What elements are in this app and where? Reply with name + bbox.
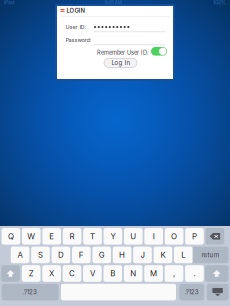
staticText: E (49, 231, 54, 241)
button[interactable]: Z (22, 265, 40, 282)
button[interactable]: Hide keyboard (207, 284, 228, 300)
button[interactable]: P (185, 228, 204, 245)
staticText: LOGIN (66, 7, 84, 14)
staticText: . (193, 269, 195, 278)
button[interactable]: .?123 (2, 284, 59, 300)
staticText: .?123 (185, 288, 199, 296)
button[interactable]: O (165, 228, 183, 245)
button[interactable]: Y (104, 228, 122, 245)
staticText: Z (29, 269, 34, 278)
button[interactable]: F (72, 247, 91, 263)
button[interactable]: .?123 (179, 284, 204, 300)
button[interactable]: Shift (205, 265, 228, 282)
button[interactable]: H (113, 247, 131, 263)
staticText: G (99, 250, 105, 260)
staticText: S (38, 250, 43, 260)
button[interactable]: J (133, 247, 152, 263)
staticText: R (70, 231, 75, 241)
button[interactable]: T (83, 228, 102, 245)
button[interactable]: D (52, 247, 70, 263)
staticText: Y (110, 231, 115, 241)
button[interactable]: K (154, 247, 172, 263)
staticText: B (110, 269, 115, 278)
button[interactable]: Log In (104, 58, 137, 67)
staticText: A (18, 250, 23, 260)
staticText: J (140, 250, 144, 260)
button[interactable]: U (124, 228, 143, 245)
button[interactable]: M (144, 265, 163, 282)
staticText: User ID: (65, 24, 86, 30)
staticText: O (171, 231, 177, 241)
button[interactable]: X (42, 265, 61, 282)
staticText: U (130, 231, 136, 241)
staticText: 100% (213, 0, 226, 5)
button[interactable]: Delete (206, 228, 224, 245)
staticText: F (79, 250, 84, 260)
button[interactable]: I (144, 228, 163, 245)
staticText: C (69, 269, 75, 278)
button[interactable]: G (92, 247, 111, 263)
button[interactable]: Shift (1, 265, 20, 282)
staticText: .?123 (23, 288, 37, 296)
staticText: iPad (4, 0, 14, 5)
staticText: K (160, 250, 165, 260)
button[interactable]: . (185, 265, 204, 282)
staticText: T (90, 231, 95, 241)
button[interactable]: C (63, 265, 81, 282)
staticText: X (49, 269, 54, 278)
staticText: , (173, 269, 175, 278)
button[interactable]: E (42, 228, 61, 245)
staticText: N (130, 269, 136, 278)
staticText: H (119, 250, 125, 260)
button[interactable]: S (31, 247, 50, 263)
button[interactable]: R (63, 228, 81, 245)
staticText: V (90, 269, 95, 278)
staticText: P (192, 231, 197, 241)
staticText: return (202, 251, 220, 259)
button[interactable]: V (83, 265, 102, 282)
button[interactable]: A (11, 247, 29, 263)
button[interactable]: Remember User ID (151, 47, 167, 56)
button[interactable]: W (22, 228, 41, 245)
staticText: W (27, 231, 35, 241)
staticText: D (58, 250, 64, 260)
button[interactable]: , (165, 265, 183, 282)
staticText: Password: (65, 37, 91, 43)
staticText: Q (8, 231, 14, 241)
staticText: I (153, 231, 155, 241)
button[interactable]: N (124, 265, 142, 282)
staticText: Remember User ID: (97, 49, 149, 56)
staticText: 9:41 AM (104, 0, 122, 5)
button[interactable]: return (193, 247, 228, 263)
button[interactable]: Q (2, 228, 20, 245)
staticText: L (181, 250, 185, 260)
staticText: M (150, 269, 157, 278)
button[interactable]: B (103, 265, 122, 282)
button[interactable]: L (174, 247, 193, 263)
staticText: Log In (111, 59, 129, 66)
